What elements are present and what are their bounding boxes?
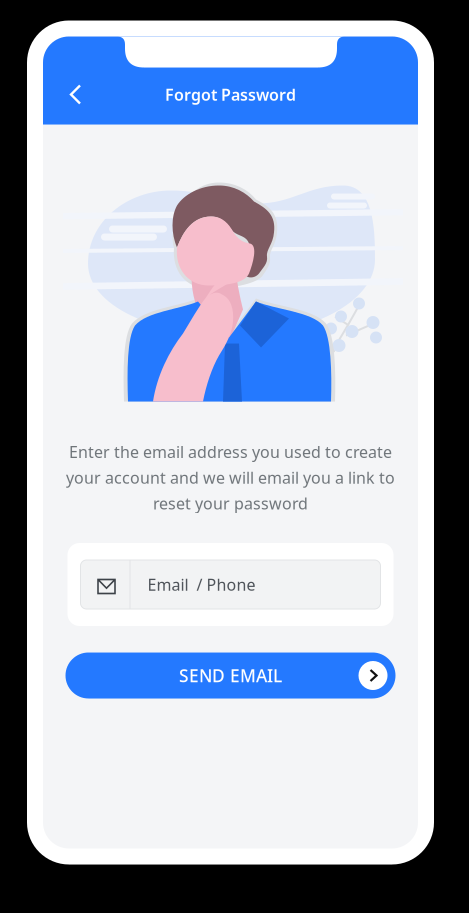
staticText: your account and we will email you a lin… — [66, 467, 395, 488]
button[interactable]: Back — [53, 71, 99, 117]
staticText: Enter the email address you used to crea… — [69, 441, 392, 462]
staticText: Email / Phone — [147, 574, 255, 595]
staticText: reset your password — [153, 493, 308, 514]
button[interactable]: SEND EMAIL — [65, 652, 395, 698]
button[interactable]: Email / Phone — [67, 543, 393, 626]
staticText: SEND EMAIL — [179, 664, 282, 687]
staticText: Forgot Password — [165, 84, 296, 105]
